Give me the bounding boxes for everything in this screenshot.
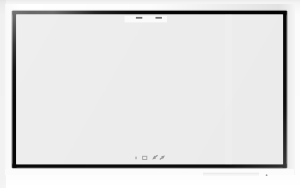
button[interactable] [0,0,300,188]
